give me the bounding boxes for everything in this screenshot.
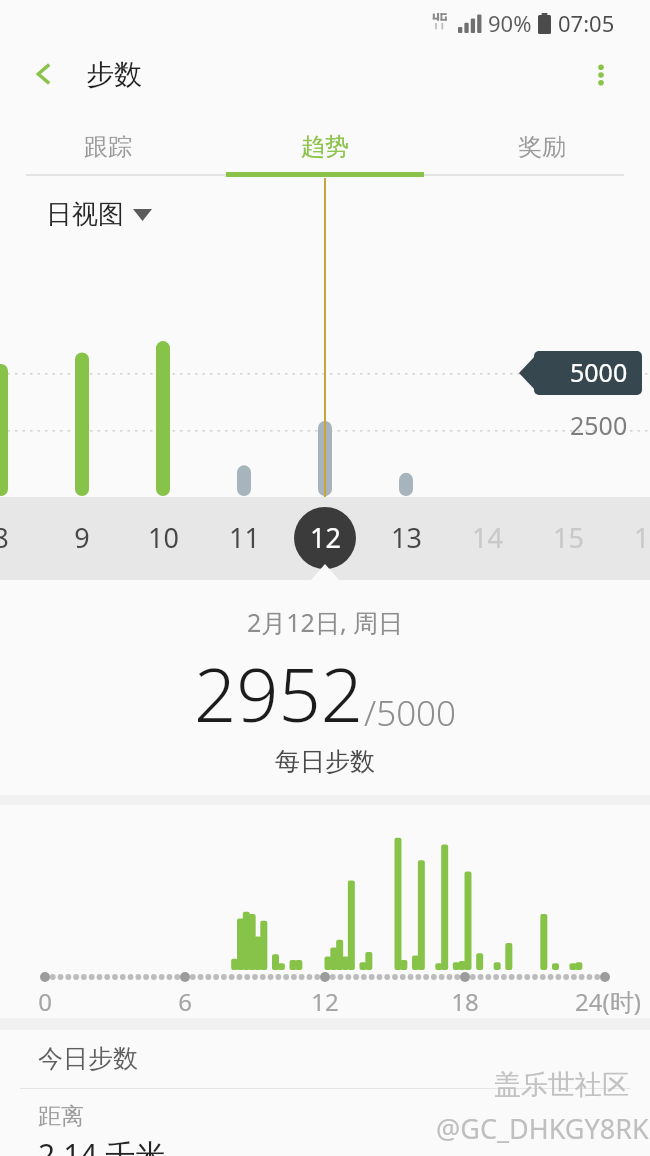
button[interactable]: 12 bbox=[285, 497, 365, 580]
button[interactable]: 11 bbox=[204, 497, 284, 580]
staticText: 90% bbox=[488, 8, 532, 38]
staticText: 13 bbox=[391, 519, 422, 556]
staticText: 14 bbox=[472, 519, 503, 556]
button[interactable]: More options bbox=[578, 52, 624, 98]
staticText: 6 bbox=[178, 985, 192, 1018]
staticText: 24(时) bbox=[575, 985, 641, 1018]
staticText: 12 bbox=[310, 519, 341, 556]
staticText: 10 bbox=[148, 519, 179, 556]
staticText: 16 bbox=[634, 519, 650, 556]
staticText: 2500 bbox=[570, 408, 628, 442]
staticText: 距离 bbox=[38, 1102, 84, 1131]
button[interactable]: 趋势 bbox=[216, 118, 433, 176]
staticText: 日视图 bbox=[46, 198, 124, 231]
staticText: 11 bbox=[229, 519, 260, 556]
button[interactable]: 8 bbox=[0, 497, 41, 580]
staticText: 9 bbox=[74, 519, 90, 556]
staticText: 0 bbox=[38, 985, 52, 1018]
staticText: 步数 bbox=[86, 57, 142, 92]
button[interactable]: 日视图 bbox=[46, 198, 152, 231]
staticText: 12 bbox=[311, 985, 339, 1018]
staticText: 07:05 bbox=[558, 8, 615, 38]
staticText: 每日步数 bbox=[275, 746, 375, 777]
staticText: 5000 bbox=[570, 355, 628, 389]
button[interactable]: 今日步数 bbox=[0, 1030, 650, 1086]
staticText: 8 bbox=[0, 519, 9, 556]
staticText: /5000 bbox=[364, 689, 457, 737]
button[interactable]: 13 bbox=[366, 497, 446, 580]
button[interactable]: 距离 bbox=[0, 1092, 650, 1156]
button[interactable]: 奖励 bbox=[433, 118, 650, 176]
staticText: @GC_DHKGY8RK bbox=[436, 1110, 649, 1147]
button[interactable]: 15 bbox=[528, 497, 608, 580]
staticText: 趋势 bbox=[301, 132, 349, 162]
button[interactable]: Back bbox=[22, 52, 66, 96]
staticText: 15 bbox=[553, 519, 584, 556]
button[interactable]: 16 bbox=[609, 497, 650, 580]
staticText: 2月12日, 周日 bbox=[247, 605, 404, 639]
button[interactable]: 14 bbox=[447, 497, 527, 580]
staticText: 2952 bbox=[194, 643, 364, 744]
button[interactable]: 9 bbox=[42, 497, 122, 580]
staticText: 2.14 千米 bbox=[38, 1134, 166, 1156]
staticText: 跟踪 bbox=[84, 132, 132, 162]
staticText: 奖励 bbox=[518, 132, 566, 162]
button[interactable]: 10 bbox=[123, 497, 203, 580]
staticText: 盖乐世社区 bbox=[494, 1068, 629, 1102]
staticText: 今日步数 bbox=[38, 1043, 138, 1074]
button[interactable]: 跟踪 bbox=[0, 118, 216, 176]
staticText: 18 bbox=[451, 985, 479, 1018]
